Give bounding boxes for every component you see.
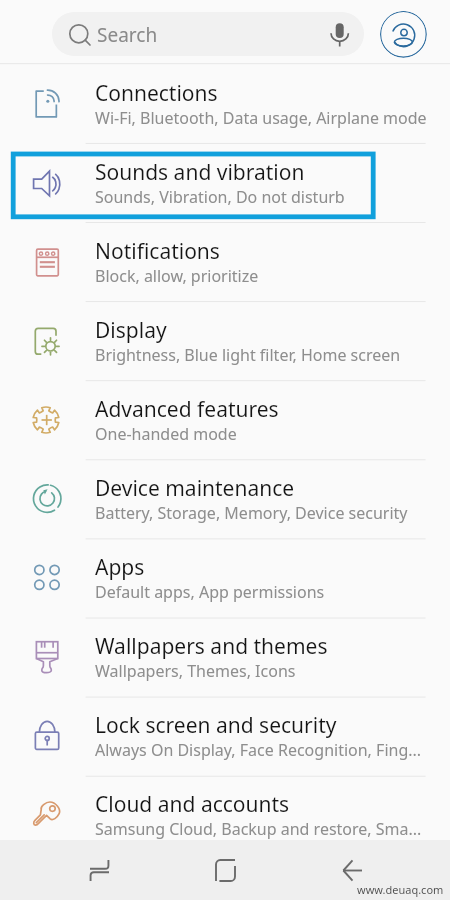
- staticText: Default apps, App permissions: [95, 581, 325, 603]
- other: Voice search: [331, 23, 349, 47]
- staticText: www.deuaq.com: [357, 882, 444, 897]
- button[interactable]: Sounds and vibration: [0, 143, 450, 222]
- staticText: One-handed mode: [95, 423, 237, 445]
- button[interactable]: Wallpapers and themes: [0, 617, 450, 696]
- button[interactable]: Back: [325, 840, 379, 900]
- button[interactable]: Lock screen and security: [0, 696, 450, 775]
- button[interactable]: Display: [0, 301, 450, 380]
- staticText: Always On Display, Face Recognition, Fin…: [95, 739, 422, 761]
- staticText: Display: [95, 316, 167, 345]
- staticText: Battery, Storage, Memory, Device securit…: [95, 502, 408, 524]
- staticText: Samsung Cloud, Backup and restore, Sma..…: [95, 818, 422, 840]
- staticText: Advanced features: [95, 395, 279, 424]
- staticText: Sounds, Vibration, Do not disturb: [95, 186, 345, 208]
- staticText: Lock screen and security: [95, 711, 337, 740]
- button[interactable]: Advanced features: [0, 380, 450, 459]
- staticText: Search: [97, 22, 158, 48]
- staticText: Block, allow, prioritize: [95, 265, 259, 287]
- staticText: Wallpapers, Themes, Icons: [95, 660, 296, 682]
- staticText: Sounds and vibration: [95, 158, 305, 187]
- button[interactable]: Search: [52, 12, 364, 56]
- button[interactable]: Account: [380, 11, 427, 58]
- button[interactable]: Notifications: [0, 222, 450, 301]
- staticText: Wi-Fi, Bluetooth, Data usage, Airplane m…: [95, 107, 427, 129]
- staticText: Device maintenance: [95, 474, 295, 503]
- staticText: Notifications: [95, 237, 220, 266]
- button[interactable]: Cloud and accounts: [0, 775, 450, 854]
- button[interactable]: Connections: [0, 64, 450, 143]
- button[interactable]: Device maintenance: [0, 459, 450, 538]
- staticText: Cloud and accounts: [95, 790, 290, 819]
- button[interactable]: Apps: [0, 538, 450, 617]
- button[interactable]: Recents: [72, 840, 126, 900]
- staticText: Brightness, Blue light filter, Home scre…: [95, 344, 401, 366]
- staticText: Wallpapers and themes: [95, 632, 328, 661]
- button[interactable]: Home: [198, 840, 252, 900]
- staticText: Connections: [95, 79, 218, 108]
- staticText: Apps: [95, 553, 145, 582]
